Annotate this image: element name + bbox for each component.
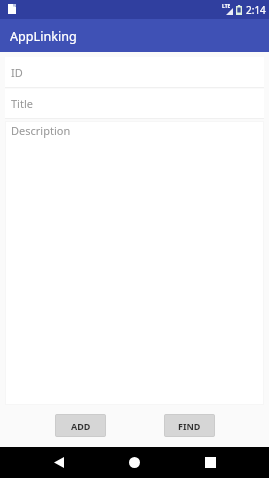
staticText: Title: [11, 96, 33, 111]
button[interactable]: Home: [110, 447, 159, 478]
staticText: ADD: [71, 420, 91, 432]
staticText: Description: [11, 123, 71, 138]
staticText: ID: [11, 65, 23, 80]
staticText: LTE: [222, 3, 231, 10]
button[interactable]: ID: [11, 57, 264, 87]
staticText: 2:14: [246, 3, 266, 17]
button[interactable]: ADD: [55, 414, 106, 437]
button[interactable]: Recent apps: [186, 447, 235, 478]
staticText: AppLinking: [10, 28, 77, 45]
button[interactable]: Back: [34, 447, 83, 478]
button[interactable]: Description: [5, 121, 264, 405]
button[interactable]: FIND: [164, 414, 215, 437]
button[interactable]: Title: [11, 89, 264, 118]
staticText: FIND: [178, 420, 201, 432]
